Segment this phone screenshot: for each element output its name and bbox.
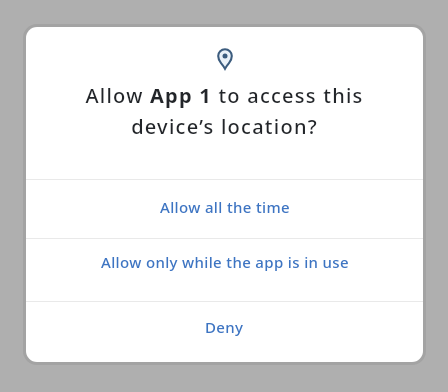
button[interactable]: Deny bbox=[26, 302, 423, 362]
button[interactable]: Allow all the time bbox=[26, 180, 423, 238]
staticText: Deny bbox=[205, 317, 244, 337]
staticText: Allow App 1 to access this device’s loca… bbox=[85, 82, 364, 139]
staticText: Allow all the time bbox=[160, 197, 290, 217]
button[interactable]: Allow only while the app is in use bbox=[26, 239, 423, 301]
staticText: Allow only while the app is in use bbox=[101, 252, 349, 272]
